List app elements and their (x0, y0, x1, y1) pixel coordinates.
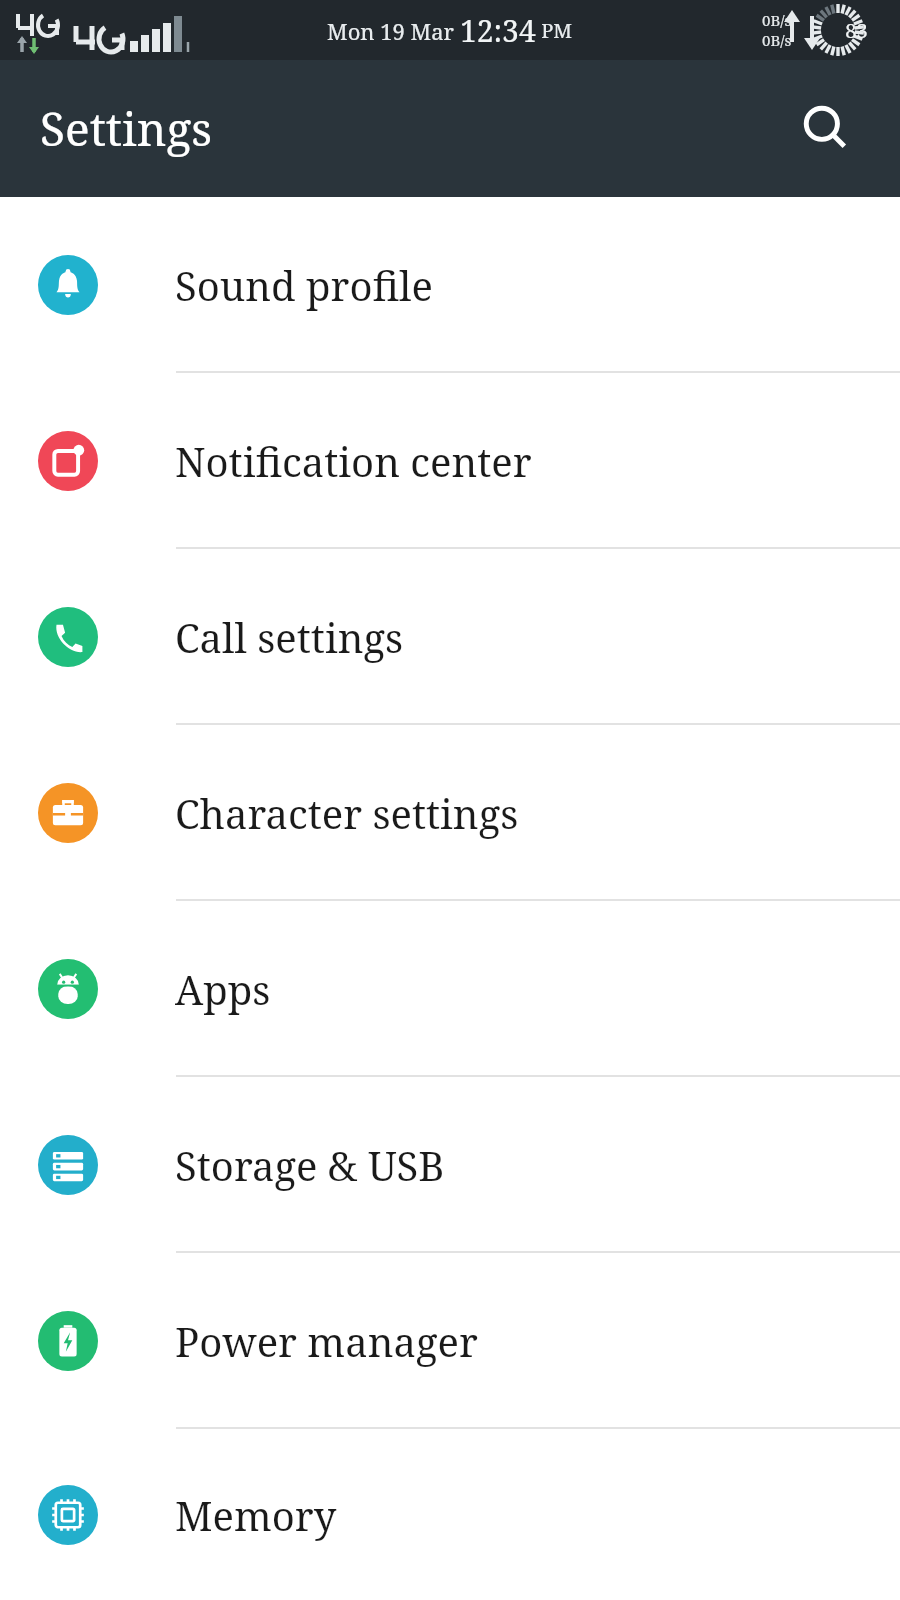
staticText: Sound profile (175, 258, 433, 312)
staticText: Call settings (175, 610, 404, 664)
button[interactable]: Sound profile (0, 197, 900, 373)
button[interactable]: Storage & USB (0, 1077, 900, 1253)
staticText: 83 (845, 17, 868, 44)
staticText: Apps (175, 962, 271, 1016)
staticText: Notification center (175, 434, 532, 488)
staticText: Mon 19 Mar (327, 16, 460, 46)
button[interactable]: Search (790, 93, 862, 165)
staticText: 0B/s (762, 10, 792, 30)
button[interactable]: Character settings (0, 725, 900, 901)
button[interactable]: Apps (0, 901, 900, 1077)
staticText: Memory (175, 1488, 337, 1542)
staticText: 0B/s (762, 30, 792, 50)
button[interactable]: Power manager (0, 1253, 900, 1429)
button[interactable]: Notification center (0, 373, 900, 549)
staticText: 12:34 (460, 10, 536, 51)
staticText: Settings (40, 97, 212, 160)
button[interactable]: Memory (0, 1429, 900, 1600)
staticText: Power manager (175, 1314, 478, 1368)
staticText: Storage & USB (175, 1138, 445, 1192)
staticText: Character settings (175, 786, 519, 840)
staticText: PM (536, 17, 573, 44)
button[interactable]: Call settings (0, 549, 900, 725)
